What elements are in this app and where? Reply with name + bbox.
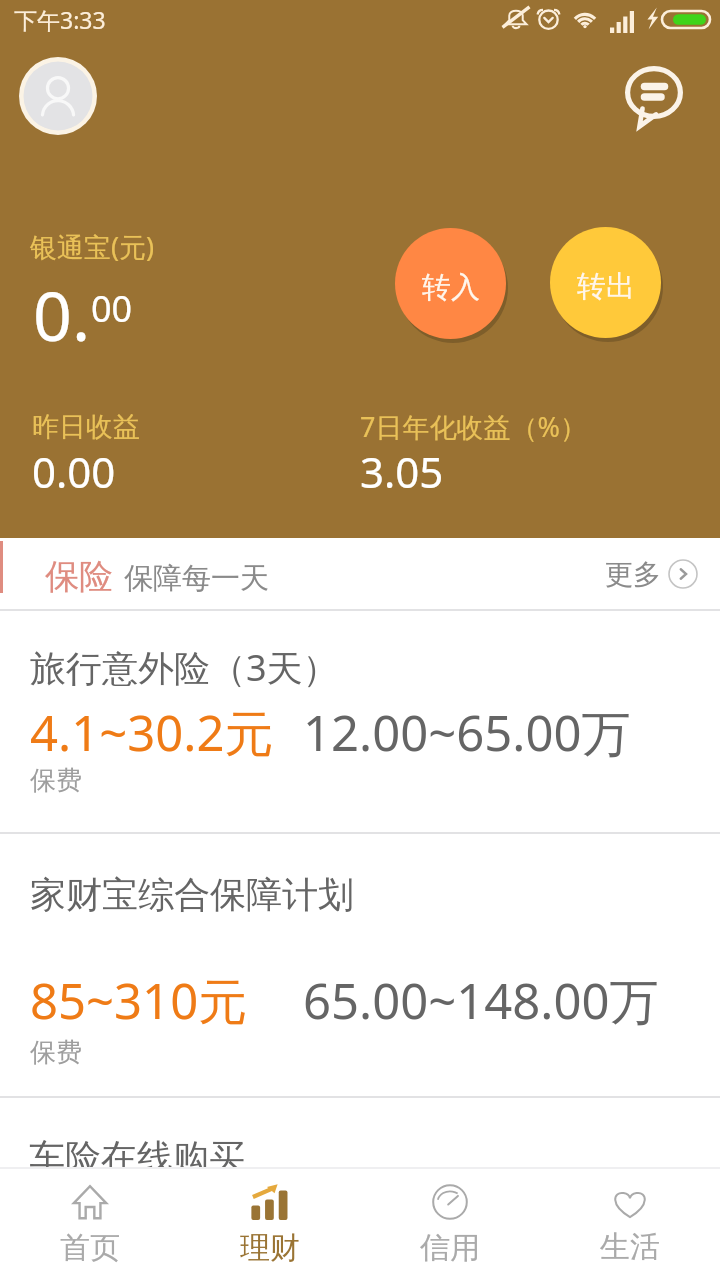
- button[interactable]: 理财: [180, 1173, 360, 1280]
- staticText: 保费: [30, 1036, 82, 1069]
- button[interactable]: 家财宝综合保障计划: [0, 834, 720, 1098]
- staticText: 转出: [577, 268, 635, 305]
- button[interactable]: 车险在线购买: [0, 1098, 720, 1180]
- staticText: 0.00: [32, 443, 116, 500]
- button[interactable]: 转出: [550, 227, 661, 338]
- button[interactable]: 首页: [0, 1173, 180, 1280]
- button[interactable]: Profile: [19, 57, 97, 135]
- button[interactable]: 信用: [360, 1173, 540, 1280]
- staticText: 理财: [240, 1229, 300, 1267]
- staticText: 更多: [605, 557, 661, 592]
- button[interactable]: Messages: [610, 50, 700, 140]
- staticText: 保险: [45, 555, 113, 598]
- staticText: 65.00~148.00万: [303, 967, 659, 1034]
- staticText: 00: [91, 284, 133, 333]
- staticText: 4.1~30.2元: [30, 699, 274, 766]
- button[interactable]: 转入: [395, 228, 506, 339]
- staticText: 下午3:33: [14, 4, 106, 35]
- staticText: 3.05: [360, 443, 444, 500]
- staticText: 保障每一天: [124, 560, 269, 597]
- staticText: 转入: [422, 269, 480, 306]
- staticText: 车险在线购买: [29, 1135, 245, 1180]
- staticText: 家财宝综合保障计划: [30, 872, 354, 917]
- staticText: 7日年化收益（%）: [360, 408, 587, 445]
- staticText: 银通宝(元): [30, 228, 155, 265]
- staticText: 12.00~65.00万: [303, 699, 631, 766]
- staticText: 旅行意外险（3天）: [30, 643, 339, 692]
- staticText: 生活: [600, 1228, 660, 1266]
- staticText: 0.: [33, 268, 91, 361]
- staticText: 85~310元: [30, 967, 248, 1034]
- staticText: 信用: [420, 1229, 480, 1267]
- button[interactable]: 保险: [0, 538, 720, 610]
- staticText: 保费: [30, 764, 82, 797]
- staticText: 昨日收益: [32, 410, 140, 444]
- button[interactable]: 生活: [540, 1173, 720, 1280]
- button[interactable]: 旅行意外险（3天）: [0, 611, 720, 833]
- staticText: 首页: [60, 1229, 120, 1267]
